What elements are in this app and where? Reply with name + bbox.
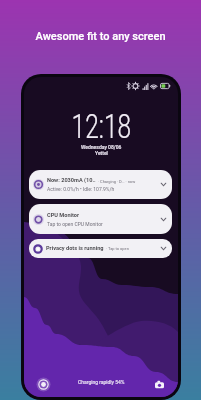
staticText: CPU Monitor	[47, 212, 80, 219]
staticText: Now: 2030mA (10..	[47, 177, 96, 184]
staticText: · Tap to open	[106, 246, 129, 251]
staticText: · Charging · D... · now	[98, 179, 136, 184]
staticText: Tap to open CPU Monitor	[47, 221, 103, 227]
staticText: 12:18	[72, 106, 131, 146]
button[interactable]: CPU Monitor	[29, 204, 172, 234]
staticText: Charging rapidly 54%	[78, 379, 125, 385]
staticText: Awesome fit to any screen	[0, 30, 201, 43]
staticText: Active: 0.0%/h • Idle: 107.9%/h	[47, 186, 115, 192]
button[interactable]: Expand notification	[158, 179, 169, 190]
button[interactable]: Expand notification	[158, 214, 169, 225]
staticText: Yettel	[95, 150, 108, 156]
button[interactable]: Expand notification	[158, 243, 169, 254]
button[interactable]: Camera	[152, 377, 167, 392]
button[interactable]: Flashlight	[36, 377, 51, 392]
button[interactable]: Now: 2030mA (10..	[29, 170, 172, 199]
button[interactable]: Privacy dots is running	[29, 239, 172, 258]
staticText: Privacy dots is running	[46, 245, 104, 252]
staticText: Wednesday 08/06	[81, 144, 122, 150]
